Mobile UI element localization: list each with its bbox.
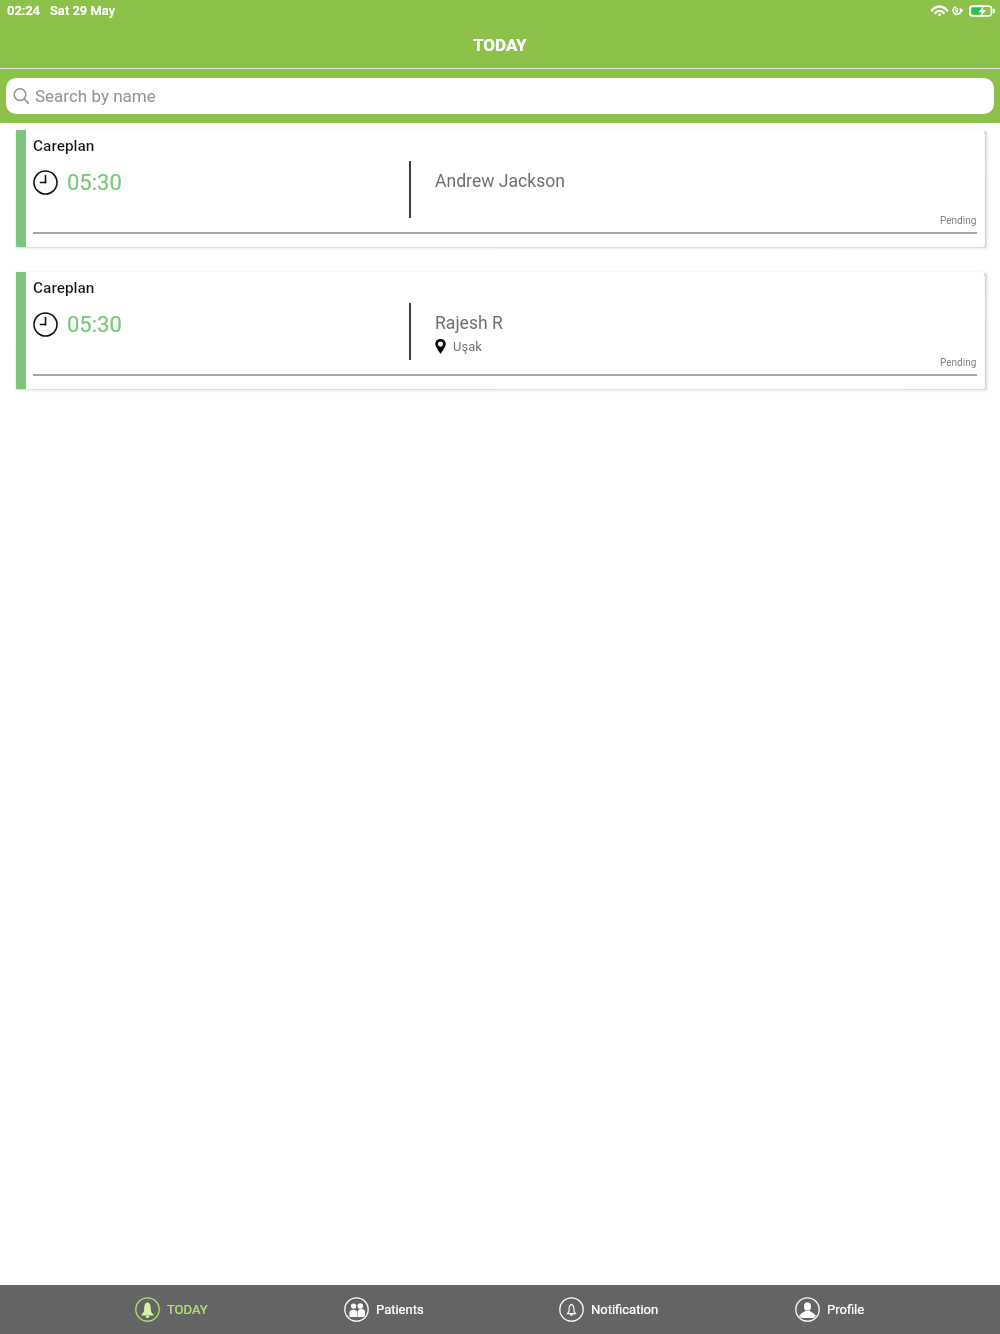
other: Search (13, 88, 29, 104)
other: Time (33, 312, 58, 337)
button[interactable]: TODAY (135, 1285, 208, 1334)
button[interactable]: Search (6, 78, 994, 114)
staticText: 02:24 (7, 3, 41, 18)
button[interactable]: Profile (795, 1285, 865, 1334)
staticText: Patients (376, 1302, 424, 1317)
staticText: Profile (827, 1302, 865, 1317)
staticText: Andrew Jackson (435, 171, 566, 192)
other: Battery charging (969, 5, 995, 17)
staticText: Rajesh R (435, 313, 503, 334)
staticText: Sat 29 May (50, 3, 116, 18)
button[interactable]: Notification (559, 1285, 659, 1334)
staticText: TODAY (473, 35, 527, 55)
staticText: Uşak (453, 339, 482, 354)
button[interactable]: Patients (344, 1285, 424, 1334)
staticText: Careplan (33, 279, 95, 297)
button[interactable]: Careplan (16, 130, 984, 247)
staticText: Careplan (33, 137, 95, 155)
other: Rotation lock (952, 5, 964, 16)
other: Time (33, 170, 58, 195)
staticText: TODAY (167, 1302, 208, 1317)
staticText: Search by name (35, 86, 156, 106)
staticText: 05:30 (67, 170, 122, 196)
staticText: 05:30 (67, 312, 122, 338)
staticText: Notification (591, 1302, 659, 1317)
staticText: Pending (940, 215, 977, 227)
staticText: Pending (940, 357, 977, 369)
button[interactable]: Careplan (16, 272, 984, 389)
other: Wi-Fi (932, 5, 947, 16)
